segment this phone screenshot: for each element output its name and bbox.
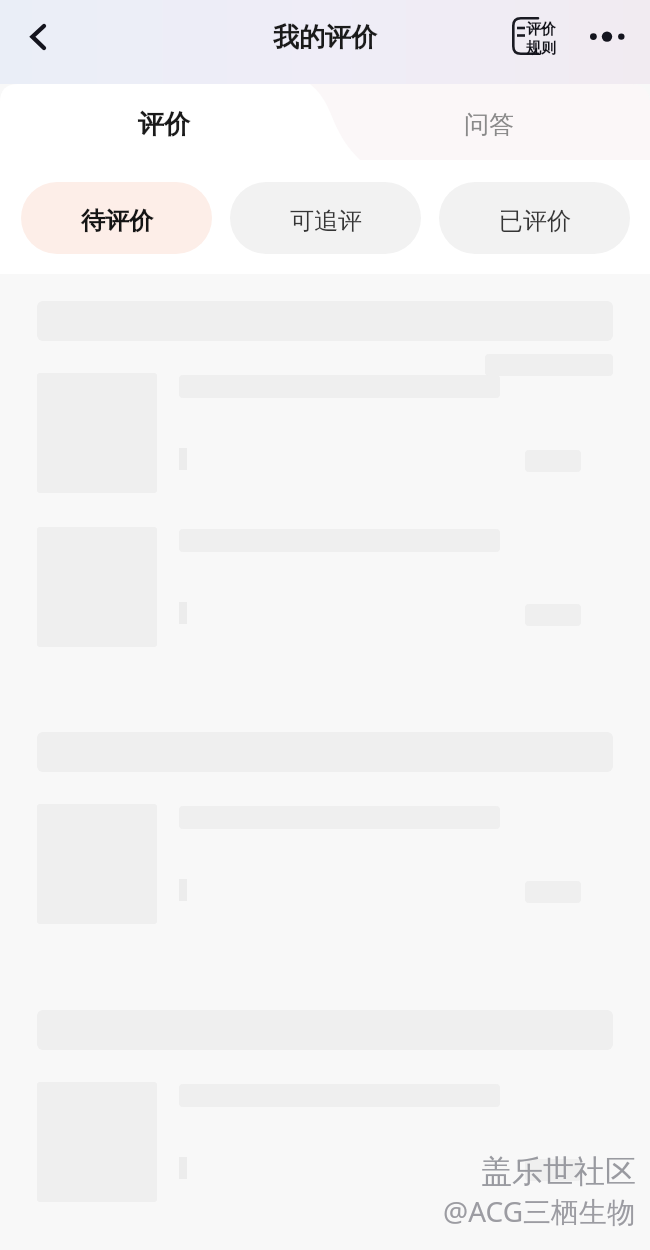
button[interactable]: 问答 — [390, 88, 588, 158]
button[interactable]: 已评价 — [439, 182, 630, 254]
staticText: 我的评价 — [273, 21, 377, 54]
staticText: 问答 — [464, 109, 514, 140]
staticText: 规则 — [526, 39, 556, 58]
staticText: @ACG三栖生物 — [443, 1192, 636, 1230]
staticText: 待评价 — [81, 206, 153, 236]
staticText: 可追评 — [290, 206, 362, 236]
button[interactable]: Back — [8, 14, 54, 60]
staticText: 评价 — [138, 108, 190, 141]
button[interactable]: 评价 — [60, 88, 268, 158]
button[interactable]: 待评价 — [21, 182, 212, 254]
button[interactable]: 可追评 — [230, 182, 421, 254]
button[interactable]: More options — [585, 14, 629, 58]
staticText: 评价 — [526, 20, 556, 39]
staticText: 已评价 — [499, 206, 571, 236]
button[interactable]: 评价规则 — [512, 17, 558, 55]
staticText: 盖乐世社区 — [481, 1152, 636, 1191]
